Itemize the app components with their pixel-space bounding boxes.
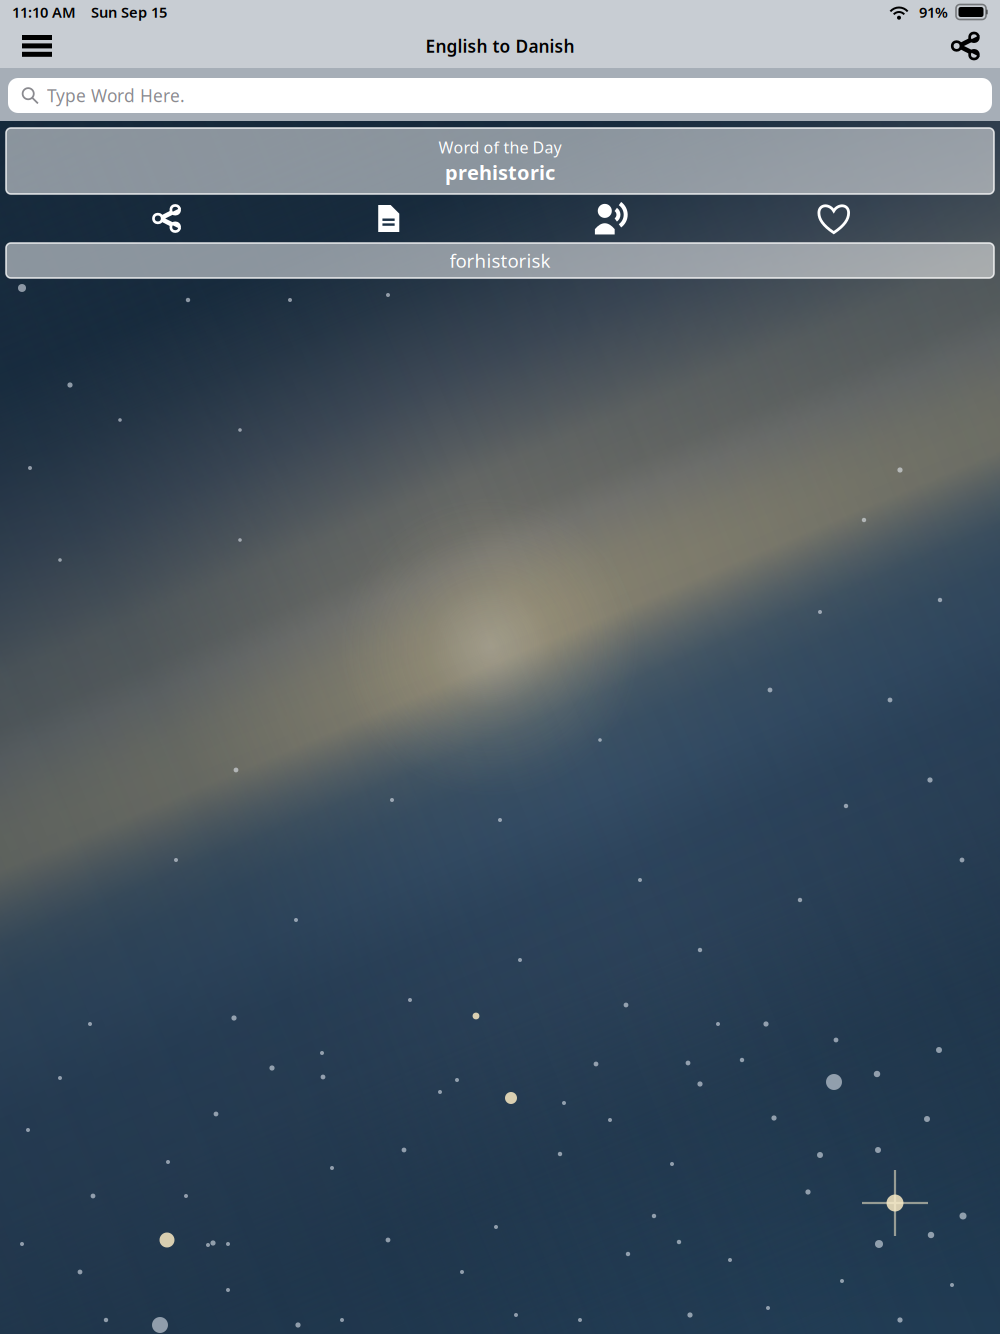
button[interactable]: Share word [55,194,277,243]
button[interactable]: Menu [0,24,66,68]
staticText: English to Danish [425,34,574,57]
staticText: forhistorisk [449,248,550,273]
staticText: Type Word Here. [47,84,185,107]
staticText: prehistoric [445,159,555,185]
button[interactable]: Pronounce [500,194,722,243]
staticText: Sun Sep 15 [91,2,167,22]
staticText: 91% [919,2,948,22]
button[interactable]: Favourite [722,194,945,243]
staticText: 11:10 AM [12,2,76,22]
button[interactable]: Type Word Here. [0,68,1000,121]
staticText: Word of the Day [438,137,561,158]
button[interactable]: Share [936,24,1000,68]
button[interactable]: Definition [277,194,500,243]
